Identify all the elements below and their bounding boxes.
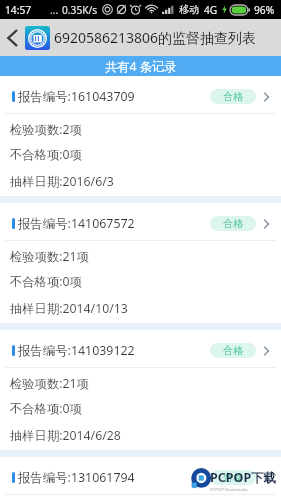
staticText: 检验项数:21项	[10, 248, 89, 265]
staticText: 14:57	[5, 3, 32, 17]
staticText: 共有4 条记录	[105, 58, 177, 75]
staticText: 报告编号:141039122	[18, 342, 135, 359]
staticText: 4G	[204, 3, 218, 17]
staticText: 检验项数:2项	[10, 121, 82, 138]
staticText: 检验项数:21项	[10, 375, 89, 392]
button[interactable]: Back	[0, 19, 25, 56]
button[interactable]: 报告编号:141039122	[0, 330, 281, 450]
staticText: 合格	[223, 471, 244, 484]
staticText: 报告编号:131061794	[18, 469, 135, 486]
button[interactable]: 报告编号:131061794	[0, 457, 281, 500]
staticText: 报告编号:161043709	[18, 88, 135, 105]
staticText: 报告编号:141067572	[18, 215, 135, 232]
button[interactable]: 报告编号:141067572	[0, 203, 281, 323]
staticText: 96%	[254, 3, 275, 17]
staticText: 0.35K/s	[62, 3, 98, 17]
button[interactable]: 报告编号:161043709	[0, 76, 281, 196]
staticText: 合格	[223, 90, 244, 103]
staticText: 合格	[223, 344, 244, 357]
staticText: PCPOP Downloads	[210, 486, 248, 492]
staticText: 不合格项:0项	[10, 273, 82, 290]
staticText: 抽样日期:2016/6/3	[10, 173, 114, 190]
staticText: PCPOP下载	[210, 469, 277, 486]
staticText: 不合格项:0项	[10, 400, 82, 417]
staticText: 不合格项:0项	[10, 146, 82, 163]
staticText: 移动	[179, 3, 200, 16]
staticText: 合格	[223, 217, 244, 230]
staticText: 抽样日期:2014/6/28	[10, 427, 121, 444]
staticText: 抽样日期:2014/10/13	[10, 300, 128, 317]
staticText: 6920586213806的监督抽查列表	[54, 28, 257, 47]
staticText: ...	[50, 3, 59, 17]
